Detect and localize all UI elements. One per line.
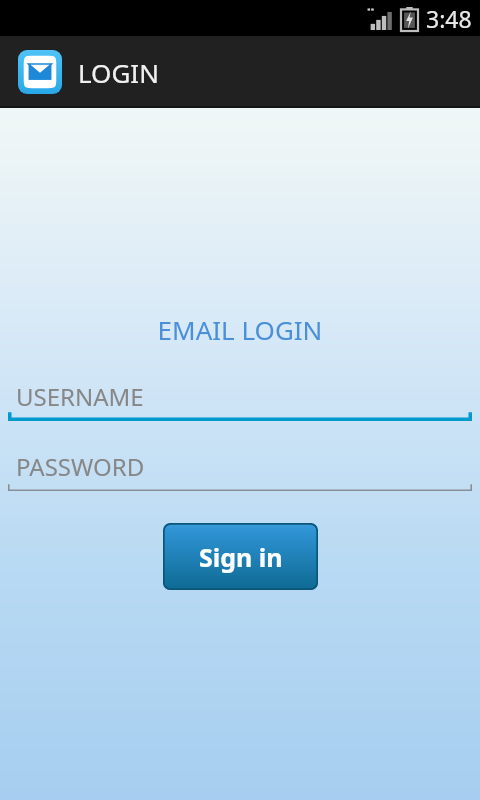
- staticText: PASSWORD: [16, 450, 145, 483]
- staticText: USERNAME: [16, 380, 144, 413]
- staticText: LOGIN: [78, 55, 159, 90]
- staticText: Sign in: [199, 540, 283, 574]
- other: App icon: [18, 50, 62, 94]
- staticText: 3:48: [426, 3, 472, 34]
- button[interactable]: USERNAME: [8, 379, 472, 421]
- button[interactable]: Sign in: [163, 523, 318, 590]
- staticText: EMAIL LOGIN: [0, 312, 480, 347]
- button[interactable]: PASSWORD: [8, 449, 472, 491]
